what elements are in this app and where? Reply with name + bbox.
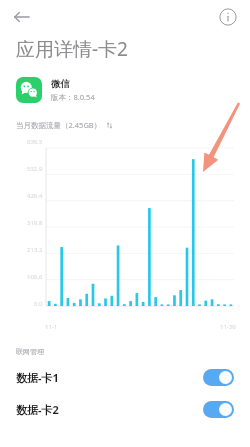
staticText: 426.4	[27, 192, 43, 200]
staticText: 微信	[51, 78, 70, 90]
button[interactable]: 当月数据流量（2.45GB）	[16, 120, 113, 130]
button[interactable]: 数据-卡1	[16, 369, 234, 386]
staticText: 11-1	[45, 323, 58, 331]
staticText: 11-30	[220, 323, 236, 331]
staticText: 106.6	[27, 273, 43, 281]
staticText: 213.2	[27, 246, 43, 254]
staticText: 数据-卡2	[16, 402, 59, 417]
staticText: 联网管理	[16, 347, 44, 356]
button[interactable]: 数据-卡2 switch, on	[203, 401, 234, 418]
staticText: 版本：8.0.54	[51, 92, 95, 102]
button[interactable]: 数据-卡2	[16, 401, 234, 418]
staticText: 当月数据流量（2.45GB）	[16, 120, 102, 130]
staticText: 应用详情-卡2	[16, 36, 128, 62]
staticText: 数据-卡1	[16, 370, 59, 385]
staticText: 0.0	[34, 300, 43, 308]
button[interactable]: 数据-卡1 switch, on	[203, 369, 234, 386]
button[interactable]: Info	[214, 3, 242, 31]
button[interactable]: Back	[7, 2, 37, 32]
button[interactable]: 微信	[16, 77, 250, 103]
staticText: 532.9	[27, 165, 43, 173]
staticText: 319.8	[27, 219, 43, 227]
staticText: 639.5	[27, 138, 43, 146]
